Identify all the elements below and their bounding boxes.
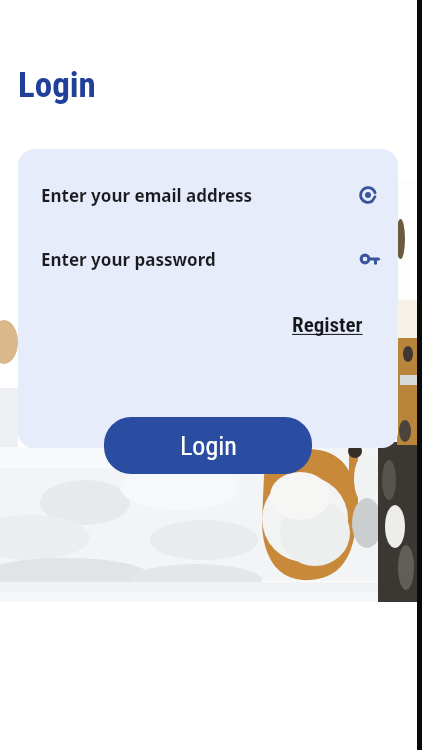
button[interactable]: Enter your password <box>41 241 380 277</box>
button[interactable]: Login <box>104 417 312 474</box>
button[interactable]: Register <box>292 313 363 338</box>
staticText: Login <box>180 431 237 461</box>
staticText: Enter your password <box>41 248 216 271</box>
staticText: Login <box>18 65 96 106</box>
button[interactable]: Enter your email address <box>41 177 378 213</box>
staticText: Enter your email address <box>41 184 253 207</box>
